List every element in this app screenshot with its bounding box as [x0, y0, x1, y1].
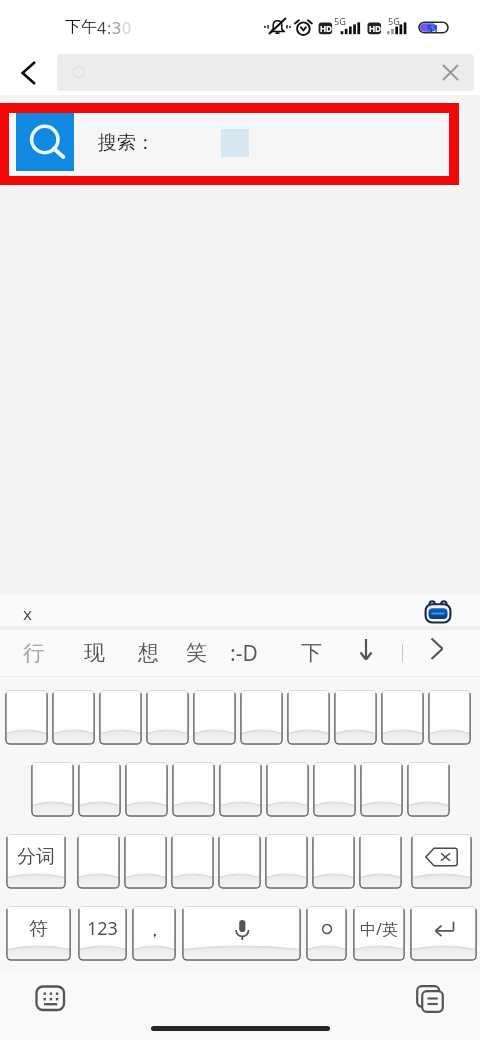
button[interactable]: 现	[72, 630, 116, 676]
staticText: 3	[112, 17, 122, 39]
button[interactable]: 符	[6, 906, 71, 961]
button[interactable]: Assistant	[424, 597, 452, 623]
button[interactable]: Keyboard	[36, 986, 65, 1011]
button[interactable]	[31, 762, 74, 817]
staticText: 现	[84, 640, 105, 666]
staticText: 下	[301, 640, 322, 666]
button[interactable]: 想	[126, 630, 170, 676]
staticText: 中/英	[360, 918, 398, 940]
button[interactable]: :-D	[222, 630, 266, 676]
button[interactable]: Clipboard	[416, 985, 445, 1014]
staticText: x	[23, 602, 32, 625]
button[interactable]	[313, 762, 356, 817]
button[interactable]: Expand	[346, 630, 386, 676]
staticText: 下午	[65, 17, 97, 37]
button[interactable]	[52, 690, 95, 745]
staticText: 分词	[17, 845, 55, 869]
staticText: 4	[97, 17, 107, 39]
staticText: :-D	[230, 639, 258, 668]
staticText: 123	[87, 916, 118, 941]
button[interactable]	[78, 762, 121, 817]
button[interactable]: 中/英	[353, 906, 405, 961]
button[interactable]	[381, 690, 424, 745]
button[interactable]	[77, 834, 120, 889]
button[interactable]	[172, 762, 215, 817]
button[interactable]	[146, 690, 189, 745]
button[interactable]: Search	[16, 113, 74, 171]
staticText: 符	[29, 917, 48, 941]
button[interactable]	[411, 834, 472, 889]
button[interactable]: 分词	[6, 834, 66, 889]
button[interactable]	[359, 834, 402, 889]
button[interactable]	[193, 690, 236, 745]
button[interactable]	[99, 690, 142, 745]
button[interactable]	[219, 762, 262, 817]
button[interactable]	[312, 834, 355, 889]
staticText: 5G	[334, 15, 346, 27]
staticText: :	[107, 17, 112, 39]
button[interactable]: 下	[289, 630, 333, 676]
button[interactable]	[182, 906, 301, 961]
staticText: ，	[145, 918, 164, 942]
button[interactable]: 123	[78, 906, 127, 961]
button[interactable]: Clear	[443, 65, 458, 80]
staticText: 行	[23, 640, 44, 666]
button[interactable]	[125, 762, 168, 817]
button[interactable]	[360, 762, 403, 817]
button[interactable]	[124, 834, 167, 889]
button[interactable]: Back	[22, 62, 35, 84]
staticText: 搜索：	[98, 131, 155, 155]
staticText: HD	[369, 23, 381, 34]
button[interactable]	[266, 762, 309, 817]
button[interactable]	[265, 834, 308, 889]
button[interactable]	[171, 834, 214, 889]
button[interactable]	[334, 690, 377, 745]
button[interactable]	[287, 690, 330, 745]
staticText: 0	[122, 17, 132, 39]
staticText: 想	[138, 640, 159, 666]
button[interactable]: 行	[11, 630, 55, 676]
button[interactable]	[407, 762, 450, 817]
button[interactable]	[240, 690, 283, 745]
staticText: 5G	[388, 15, 400, 27]
button[interactable]: 笑	[174, 630, 218, 676]
staticText: 笑	[186, 640, 207, 666]
button[interactable]	[5, 690, 48, 745]
button[interactable]	[306, 906, 347, 961]
staticText: 51	[427, 22, 439, 36]
button[interactable]: ，	[132, 906, 176, 961]
button[interactable]	[218, 834, 261, 889]
button[interactable]	[428, 690, 471, 745]
button[interactable]	[57, 54, 474, 91]
button[interactable]: More	[420, 630, 458, 676]
staticText: HD	[320, 23, 332, 34]
button[interactable]	[410, 906, 477, 961]
